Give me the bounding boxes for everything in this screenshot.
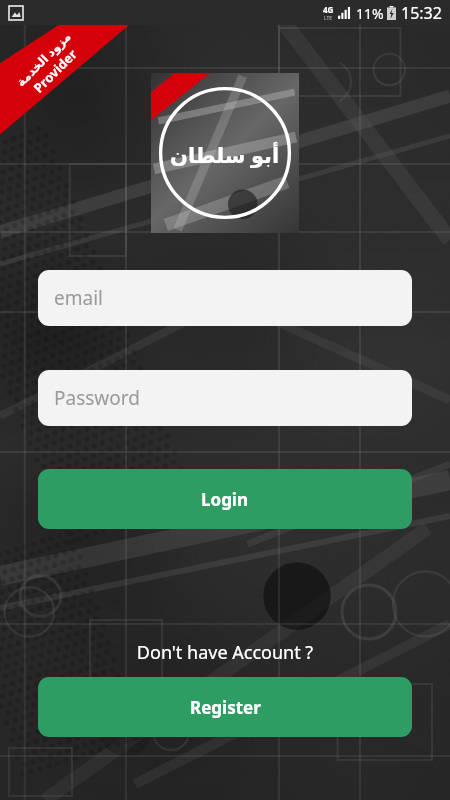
staticText: 11% [356,4,384,23]
button[interactable]: Login [38,469,412,529]
staticText: Login [201,488,249,511]
staticText: 15:32 [401,2,442,24]
staticText: LTE [324,15,333,22]
staticText: أبو سلطان [170,141,280,170]
staticText: Don't have Account ? [0,640,450,665]
staticText: Provider [29,45,81,96]
staticText: email [54,285,103,311]
button[interactable]: Password [38,370,412,426]
other: Screenshot [9,6,23,20]
staticText: مزود الخدمة [12,28,74,89]
staticText: Password [54,385,140,411]
staticText: Register [190,696,261,719]
staticText: 4G [323,4,334,15]
button[interactable]: Register [38,677,412,737]
button[interactable]: email [38,270,412,326]
